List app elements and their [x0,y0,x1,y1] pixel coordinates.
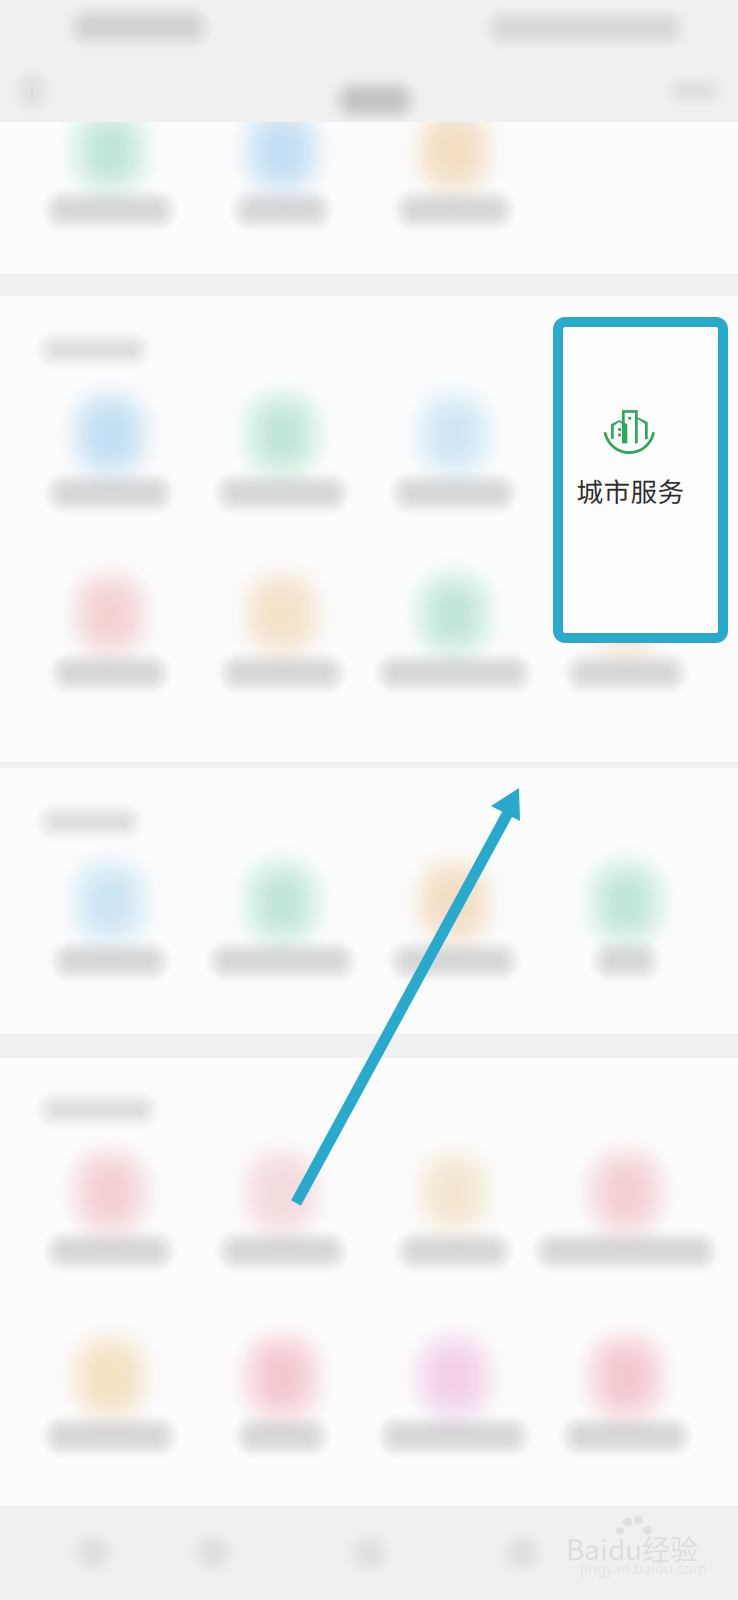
button[interactable]: Tab [45,1516,141,1592]
button[interactable] [24,370,196,554]
button[interactable]: 城市服务 [553,317,728,643]
button[interactable] [368,550,540,734]
button[interactable] [196,87,368,271]
button[interactable] [196,1128,368,1312]
button[interactable] [368,87,540,271]
button[interactable] [24,550,196,734]
button[interactable] [24,1128,196,1312]
button[interactable]: Tab [474,1516,570,1592]
staticText: jingyan.baidu.com [580,1558,707,1578]
button[interactable] [540,370,712,554]
button[interactable] [196,838,368,1022]
button[interactable] [368,370,540,554]
staticText: 城市服务 [576,471,684,509]
button[interactable] [368,1313,540,1497]
button[interactable] [540,1128,712,1312]
button[interactable]: Tab [165,1516,261,1592]
button[interactable]: More options [657,58,731,124]
button[interactable] [540,550,712,734]
button[interactable] [540,1313,712,1497]
button[interactable] [24,87,196,271]
button[interactable] [196,370,368,554]
button[interactable] [196,1313,368,1497]
button[interactable]: Tab [321,1516,417,1592]
button[interactable] [368,1128,540,1312]
button[interactable] [24,1313,196,1497]
button[interactable] [196,550,368,734]
staticText: Baidu经验 [566,1528,698,1568]
button[interactable] [24,838,196,1022]
button[interactable] [540,838,712,1022]
button[interactable] [368,838,540,1022]
button[interactable]: Back [0,58,69,124]
